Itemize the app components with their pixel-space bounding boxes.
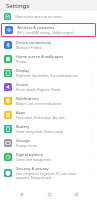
staticText: Home screen & wallpaper: [16, 54, 64, 59]
staticText: Screen time management: [16, 158, 52, 162]
button[interactable]: Back: [15, 188, 27, 200]
button[interactable]: Silence your device at set times: [0, 11, 97, 22]
staticText: Do not disturb, Ringtone, Vibrate: [16, 88, 61, 92]
staticText: Permissions, Default apps, App twin: [16, 116, 65, 120]
staticText: Display: [16, 68, 30, 73]
staticText: Storage cleaner: [16, 144, 38, 148]
button[interactable]: Wireless & networks: [1, 23, 96, 37]
button[interactable]: Home screen & wallpaper: [0, 52, 97, 66]
button[interactable]: Battery: [0, 122, 97, 136]
staticText: Badges, Lock screen notifications: [16, 102, 62, 106]
staticText: Battery: [16, 124, 30, 129]
button[interactable]: Display: [0, 66, 97, 80]
button[interactable]: Sound: [0, 80, 97, 94]
button[interactable]: Storage: [0, 136, 97, 150]
staticText: Storage: [16, 138, 31, 143]
staticText: Face recognition, Fingerprint ID, Lock s…: [16, 172, 87, 180]
staticText: Device connectivity: [16, 40, 51, 45]
button[interactable]: Apps: [0, 108, 97, 122]
staticText: Wi-Fi, Cover/SIM settings, Mobile networ…: [17, 31, 74, 35]
button[interactable]: Security & privacy: [0, 164, 97, 182]
button[interactable]: Digital balance: [0, 150, 97, 164]
staticText: Digital balance: [16, 152, 44, 157]
staticText: Silence your device at set times: [15, 15, 89, 19]
staticText: Bluetooth, Printing: [16, 46, 42, 50]
button[interactable]: Recents: [70, 188, 82, 200]
button[interactable]: Device connectivity: [0, 38, 97, 52]
staticText: Security & privacy: [16, 166, 49, 171]
staticText: Themes: [16, 60, 27, 64]
button[interactable]: Notifications: [0, 94, 97, 108]
staticText: Settings: [6, 2, 30, 10]
staticText: Power saving mode, Battery usage: [16, 130, 64, 134]
staticText: Wireless & networks: [17, 25, 55, 30]
button[interactable]: Home: [43, 188, 55, 200]
staticText: Sound: [16, 82, 28, 87]
staticText: Brightness, Eye comfort, Text and displa…: [16, 74, 78, 78]
staticText: Apps: [16, 110, 26, 115]
staticText: Notifications: [16, 96, 40, 101]
